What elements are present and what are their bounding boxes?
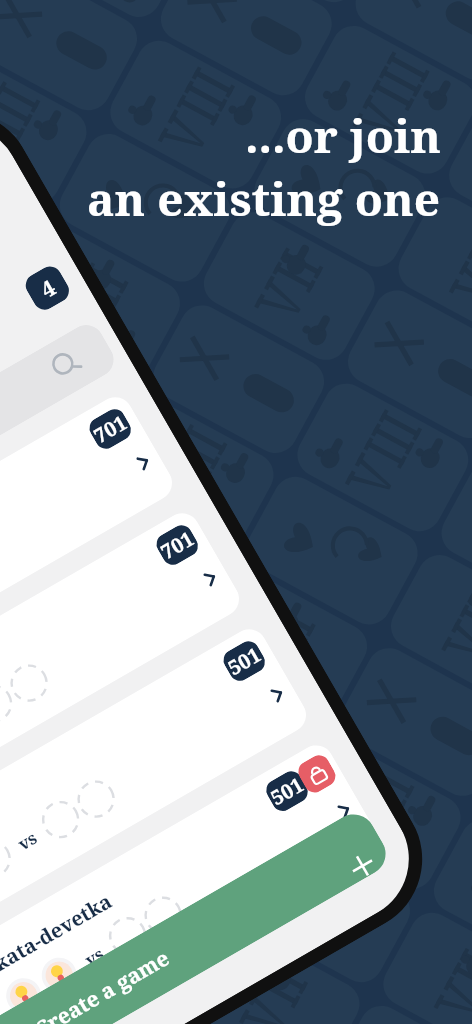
- staticText: vs: [80, 942, 108, 971]
- button[interactable]: karo-fortuna: [0, 507, 246, 824]
- staticText: 501: [223, 641, 266, 681]
- button[interactable]: sakata-devetka: [0, 739, 380, 1024]
- staticText: ...or join: [245, 104, 441, 167]
- staticText: sakata-devetka: [0, 887, 117, 988]
- staticText: Create a game: [29, 943, 175, 1024]
- staticText: vs: [13, 826, 41, 855]
- button[interactable]: Search games: [0, 318, 120, 597]
- staticText: an existing one: [87, 167, 441, 230]
- staticText: 4: [35, 272, 61, 304]
- staticText: 701: [89, 409, 132, 449]
- staticText: 701: [156, 525, 199, 565]
- button[interactable]: kec-tuna: [0, 623, 313, 940]
- other: Private game: [294, 751, 339, 796]
- button[interactable]: blef-sakata: [0, 391, 179, 708]
- staticText: 501: [265, 771, 308, 811]
- other: Create a game: [346, 849, 379, 882]
- button[interactable]: Create a game: [0, 806, 394, 1024]
- button[interactable]: 4: [21, 262, 73, 314]
